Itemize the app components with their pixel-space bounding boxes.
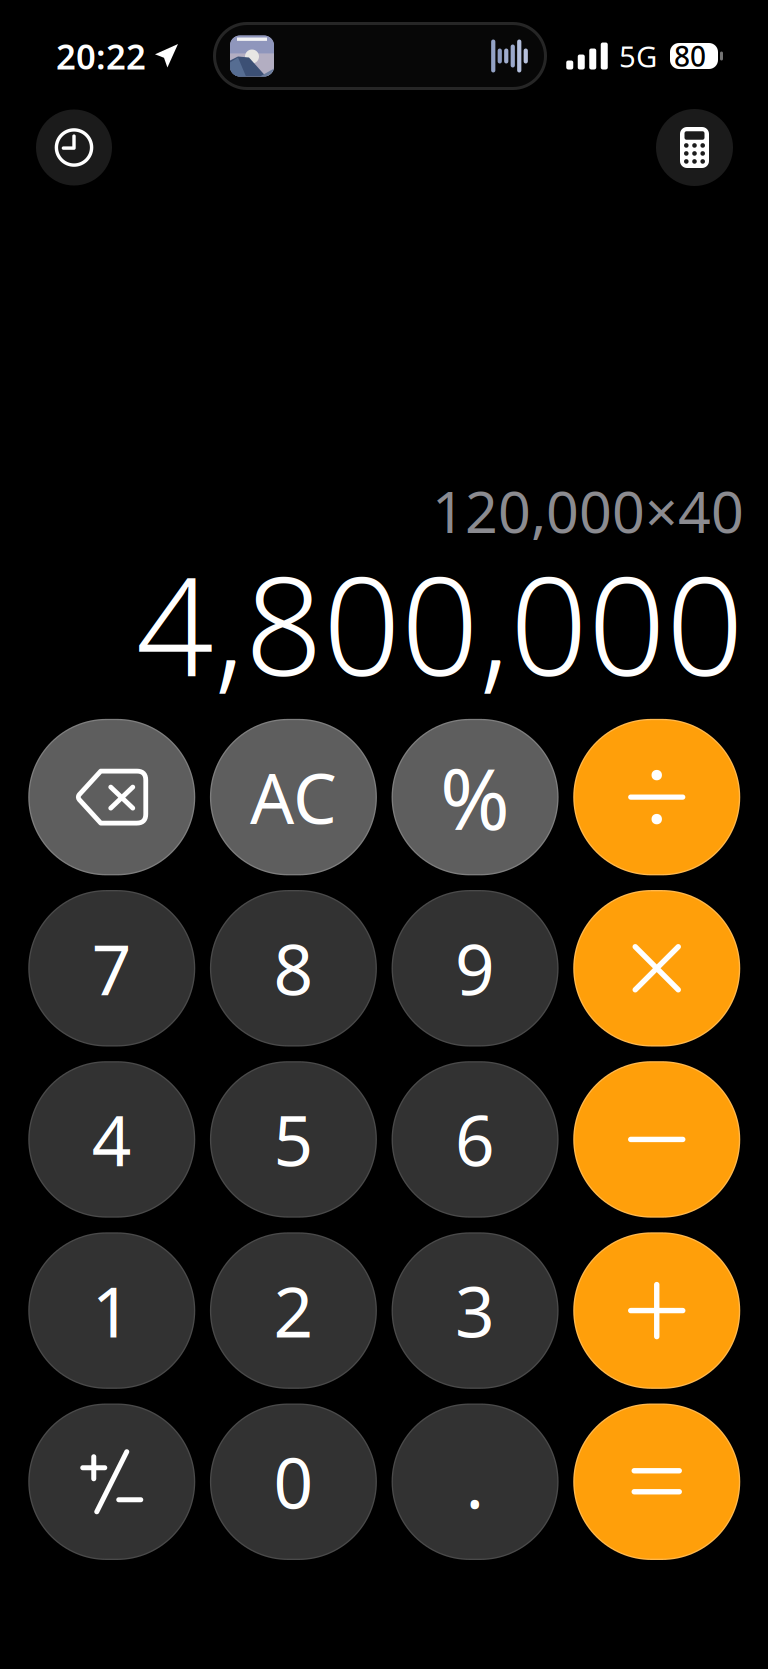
button[interactable]: Divide bbox=[573, 719, 740, 875]
button[interactable]: Multiply bbox=[573, 890, 740, 1046]
staticText: 4,800,000 bbox=[136, 533, 744, 713]
button[interactable]: Calculator mode bbox=[656, 109, 733, 186]
button[interactable]: History bbox=[36, 109, 112, 185]
staticText: 3 bbox=[455, 1265, 495, 1357]
staticText: 80 bbox=[674, 37, 706, 75]
staticText: AC bbox=[250, 751, 337, 843]
staticText: 20:22 bbox=[56, 33, 146, 79]
staticText: . bbox=[466, 1436, 485, 1528]
button[interactable]: Delete bbox=[28, 719, 195, 875]
button[interactable]: 7 bbox=[28, 890, 195, 1046]
button[interactable]: 0 bbox=[210, 1403, 377, 1560]
staticText: 9 bbox=[455, 922, 495, 1014]
staticText: 120,000×40 bbox=[432, 473, 744, 549]
staticText: 0 bbox=[273, 1436, 313, 1528]
staticText: 4 bbox=[92, 1093, 132, 1185]
button[interactable]: 4 bbox=[28, 1061, 195, 1218]
button[interactable]: Add bbox=[573, 1232, 740, 1389]
staticText: 6 bbox=[455, 1093, 495, 1185]
staticText: 2 bbox=[273, 1265, 313, 1357]
button[interactable]: . bbox=[392, 1403, 559, 1560]
staticText: 5 bbox=[273, 1093, 313, 1185]
button[interactable]: 9 bbox=[392, 890, 559, 1046]
staticText: 7 bbox=[92, 922, 132, 1014]
button[interactable]: 2 bbox=[210, 1232, 377, 1389]
staticText: 1 bbox=[92, 1265, 132, 1357]
button[interactable]: 5 bbox=[210, 1061, 377, 1218]
button[interactable]: AC bbox=[210, 719, 377, 875]
button[interactable]: 6 bbox=[392, 1061, 559, 1218]
button[interactable]: 1 bbox=[28, 1232, 195, 1389]
button[interactable]: 3 bbox=[392, 1232, 559, 1389]
staticText: 5G bbox=[619, 36, 657, 75]
button[interactable]: % bbox=[392, 719, 559, 875]
button[interactable]: 8 bbox=[210, 890, 377, 1046]
button[interactable]: Subtract bbox=[573, 1061, 740, 1218]
staticText: 8 bbox=[273, 922, 313, 1014]
button[interactable]: Equals bbox=[573, 1403, 740, 1560]
staticText: % bbox=[440, 741, 510, 853]
button[interactable]: Toggle sign bbox=[28, 1403, 195, 1560]
